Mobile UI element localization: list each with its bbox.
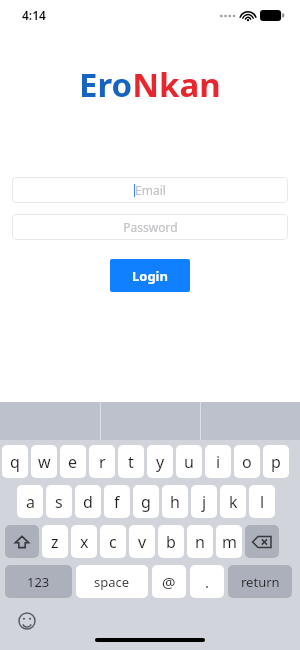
staticText: s <box>55 491 63 513</box>
button[interactable]: q <box>2 445 28 478</box>
button[interactable]: s <box>46 485 72 518</box>
staticText: m <box>222 531 237 553</box>
staticText: w <box>38 451 51 473</box>
staticText: i <box>216 451 221 473</box>
staticText: Password <box>123 219 178 235</box>
button[interactable]: g <box>133 485 159 518</box>
button[interactable]: Backspace <box>245 525 279 558</box>
button[interactable]: r <box>89 445 115 478</box>
button[interactable]: l <box>249 485 275 518</box>
button[interactable]: f <box>104 485 130 518</box>
staticText: z <box>51 531 59 553</box>
staticText: k <box>229 491 238 513</box>
button[interactable]: Email <box>12 177 288 203</box>
staticText: e <box>68 451 78 473</box>
button[interactable]: Shift <box>5 525 39 558</box>
staticText: a <box>26 491 35 513</box>
staticText: b <box>166 531 176 553</box>
staticText: o <box>242 451 252 473</box>
staticText: t <box>128 451 134 473</box>
staticText: u <box>184 451 194 473</box>
staticText: EroNkan <box>79 62 221 107</box>
staticText: 123 <box>27 573 50 591</box>
staticText: v <box>138 531 147 553</box>
staticText: g <box>141 491 151 513</box>
button[interactable]: t <box>118 445 144 478</box>
staticText: @ <box>162 572 176 592</box>
button[interactable]: Login <box>110 259 190 292</box>
button[interactable]: . <box>190 565 224 598</box>
staticText: return <box>241 573 280 591</box>
button[interactable]: u <box>176 445 202 478</box>
button[interactable]: p <box>263 445 289 478</box>
staticText: space <box>94 573 130 591</box>
button[interactable]: x <box>71 525 97 558</box>
staticText: c <box>109 531 117 553</box>
button[interactable]: c <box>100 525 126 558</box>
button[interactable]: space <box>76 565 148 598</box>
button[interactable]: Password <box>12 214 288 240</box>
button[interactable]: d <box>75 485 101 518</box>
button[interactable]: return <box>228 565 292 598</box>
button[interactable]: z <box>42 525 68 558</box>
staticText: x <box>80 531 89 553</box>
staticText: r <box>99 451 106 473</box>
button[interactable]: i <box>205 445 231 478</box>
staticText: p <box>271 451 281 473</box>
staticText: Email <box>135 182 166 198</box>
staticText: Login <box>132 267 168 285</box>
button[interactable]: e <box>60 445 86 478</box>
button[interactable]: b <box>158 525 184 558</box>
button[interactable]: n <box>187 525 213 558</box>
staticText: l <box>260 491 265 513</box>
staticText: . <box>205 572 210 592</box>
button[interactable]: v <box>129 525 155 558</box>
button[interactable]: m <box>216 525 242 558</box>
button[interactable]: o <box>234 445 260 478</box>
staticText: j <box>202 491 207 513</box>
button[interactable]: k <box>220 485 246 518</box>
button[interactable]: j <box>191 485 217 518</box>
button[interactable]: h <box>162 485 188 518</box>
button[interactable]: Emoji <box>16 610 38 632</box>
button[interactable]: @ <box>152 565 186 598</box>
button[interactable]: w <box>31 445 57 478</box>
staticText: h <box>170 491 180 513</box>
button[interactable]: 123 <box>5 565 72 598</box>
staticText: q <box>10 451 20 473</box>
staticText: 4:14 <box>22 7 46 23</box>
staticText: y <box>156 451 165 473</box>
staticText: n <box>195 531 205 553</box>
button[interactable]: a <box>17 485 43 518</box>
staticText: d <box>83 491 93 513</box>
button[interactable]: y <box>147 445 173 478</box>
staticText: f <box>114 491 120 513</box>
